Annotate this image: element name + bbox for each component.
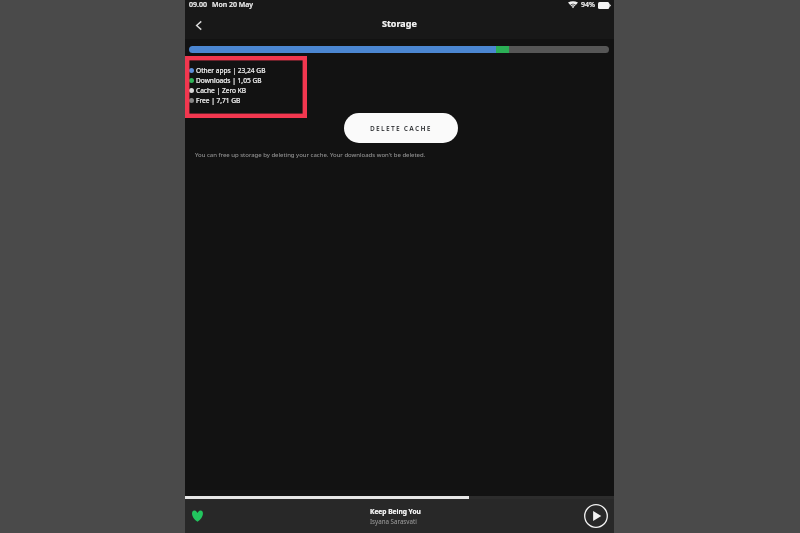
staticText: Storage: [382, 17, 417, 29]
staticText: 09.00: [189, 0, 207, 10]
staticText: Downloads | 1,05 GB: [196, 76, 262, 85]
button[interactable]: Back: [189, 15, 209, 35]
staticText: 94%: [581, 0, 595, 10]
button[interactable]: Play: [584, 504, 608, 528]
button[interactable]: Keep Being You: [370, 507, 421, 525]
staticText: Other apps | 23,24 GB: [196, 66, 266, 75]
staticText: Free | 7,71 GB: [196, 96, 241, 105]
button[interactable]: DELETE CACHE: [344, 113, 458, 143]
staticText: Mon 20 May: [212, 0, 253, 10]
staticText: Isyana Sarasvati: [370, 517, 417, 525]
staticText: Keep Being You: [370, 507, 421, 516]
staticText: DELETE CACHE: [370, 124, 432, 133]
button[interactable]: Like: [188, 507, 206, 525]
staticText: You can free up storage by deleting your…: [195, 151, 426, 159]
staticText: Cache | Zero KB: [196, 86, 247, 95]
